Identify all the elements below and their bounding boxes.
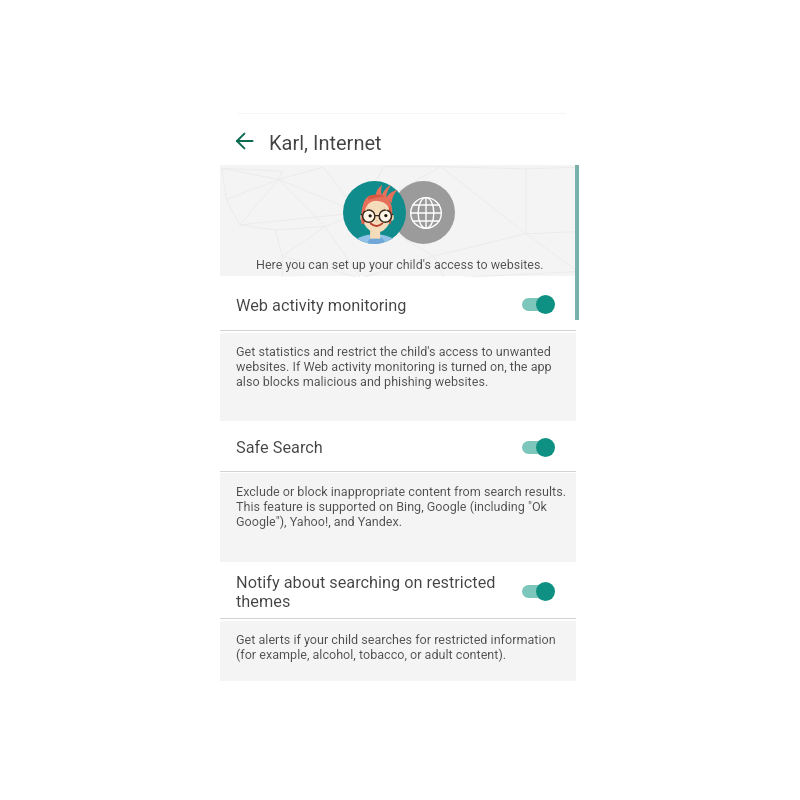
staticText: Get alerts if your child searches for re… (236, 632, 556, 647)
staticText: (for example, alcohol, tobacco, or adult… (236, 647, 507, 662)
staticText: This feature is supported on Bing, Googl… (236, 499, 547, 514)
staticText: Exclude or block inappropriate content f… (236, 484, 566, 499)
button[interactable]: Notify about searching on restricted (220, 563, 576, 619)
staticText: also blocks malicious and phishing websi… (236, 374, 489, 389)
button[interactable]: Notify about searching on restricted the… (520, 580, 560, 602)
button[interactable]: Safe Search (220, 421, 576, 472)
button[interactable]: Back (231, 127, 259, 155)
staticText: Web activity monitoring (236, 296, 407, 315)
staticText: Safe Search (236, 438, 323, 457)
staticText: Notify about searching on restricted (236, 573, 496, 592)
staticText: Google"), Yahoo!, and Yandex. (236, 514, 403, 529)
button[interactable]: Web activity monitoring (220, 277, 576, 331)
button[interactable]: Web activity monitoring, on (520, 293, 560, 315)
staticText: Get statistics and restrict the child's … (236, 344, 551, 359)
staticText: Here you can set up your child's access … (256, 257, 544, 272)
button[interactable]: Safe Search, on (520, 436, 560, 458)
staticText: themes (236, 592, 291, 611)
staticText: Karl, Internet (269, 131, 382, 154)
staticText: websites. If Web activity monitoring is … (236, 359, 552, 374)
